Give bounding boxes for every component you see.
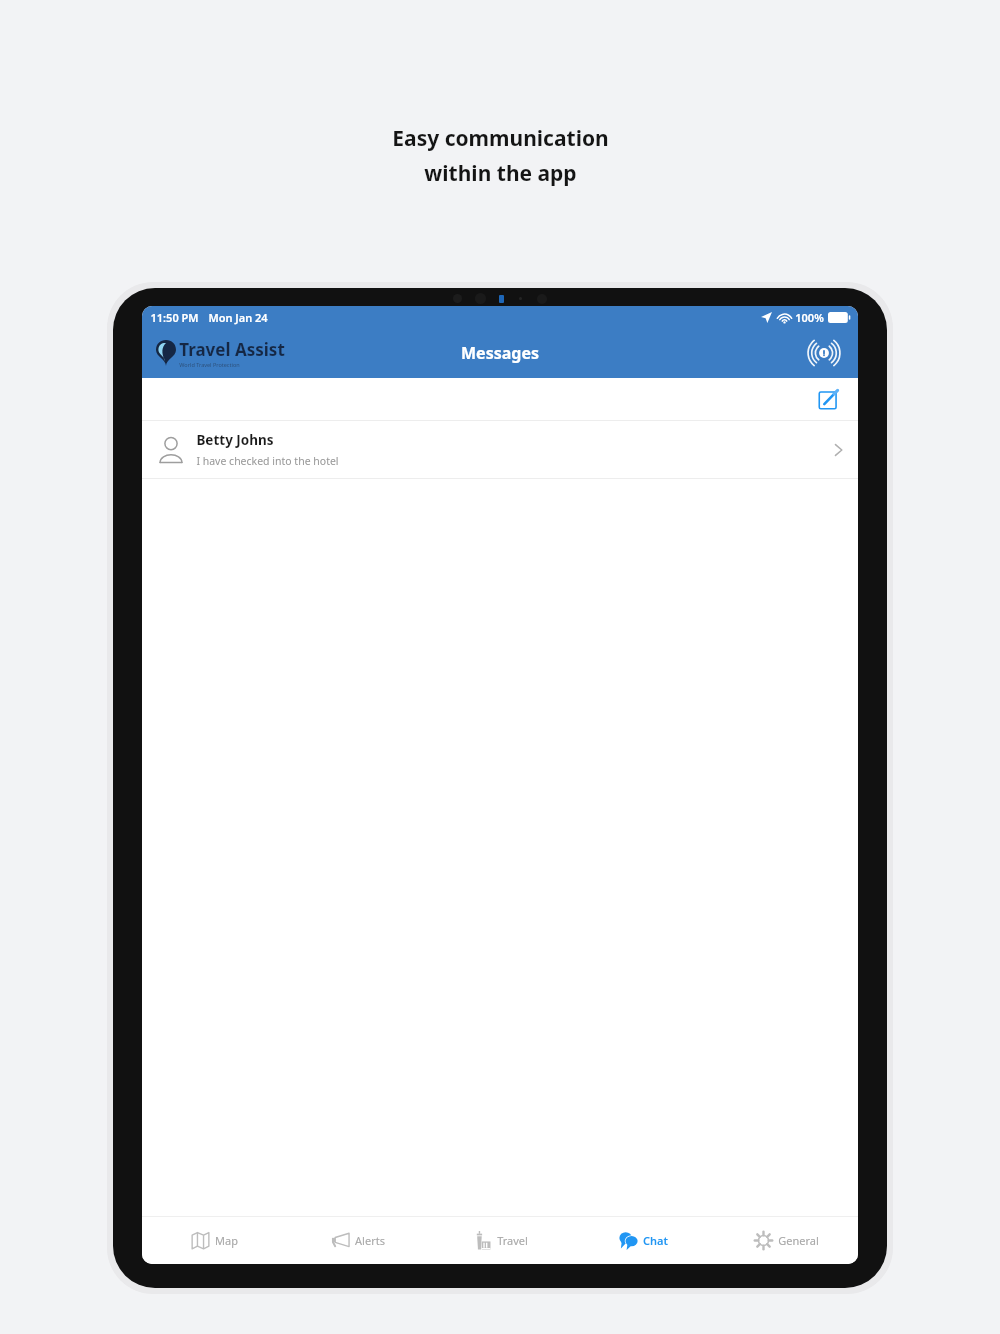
staticText: Easy communication [392,124,609,153]
staticText: Messages [461,342,539,364]
staticText: Travel [497,1233,528,1248]
staticText: 11:50 PM [150,310,199,325]
staticText: Travel Assist [179,338,285,361]
button[interactable]: Map [142,1216,286,1264]
staticText: within the app [424,159,577,188]
staticText: Map [215,1233,238,1248]
staticText: World Travel Protection [179,361,240,368]
staticText: Mon Jan 24 [208,310,268,325]
button[interactable]: General [715,1216,858,1264]
staticText: General [778,1233,819,1248]
button[interactable]: Travel [429,1216,572,1264]
button[interactable]: Compose message [810,381,846,417]
button[interactable]: Emergency assistance [802,331,846,375]
staticText: I have checked into the hotel [196,454,339,468]
staticText: Chat [643,1233,668,1248]
button[interactable]: Betty Johns [142,421,858,478]
staticText: Alerts [355,1233,385,1248]
staticText: Betty Johns [196,431,274,449]
button[interactable]: Alerts [286,1216,429,1264]
button[interactable]: Travel Assist [156,338,285,368]
staticText: 100% [795,310,824,325]
button[interactable]: Chat [572,1216,715,1264]
